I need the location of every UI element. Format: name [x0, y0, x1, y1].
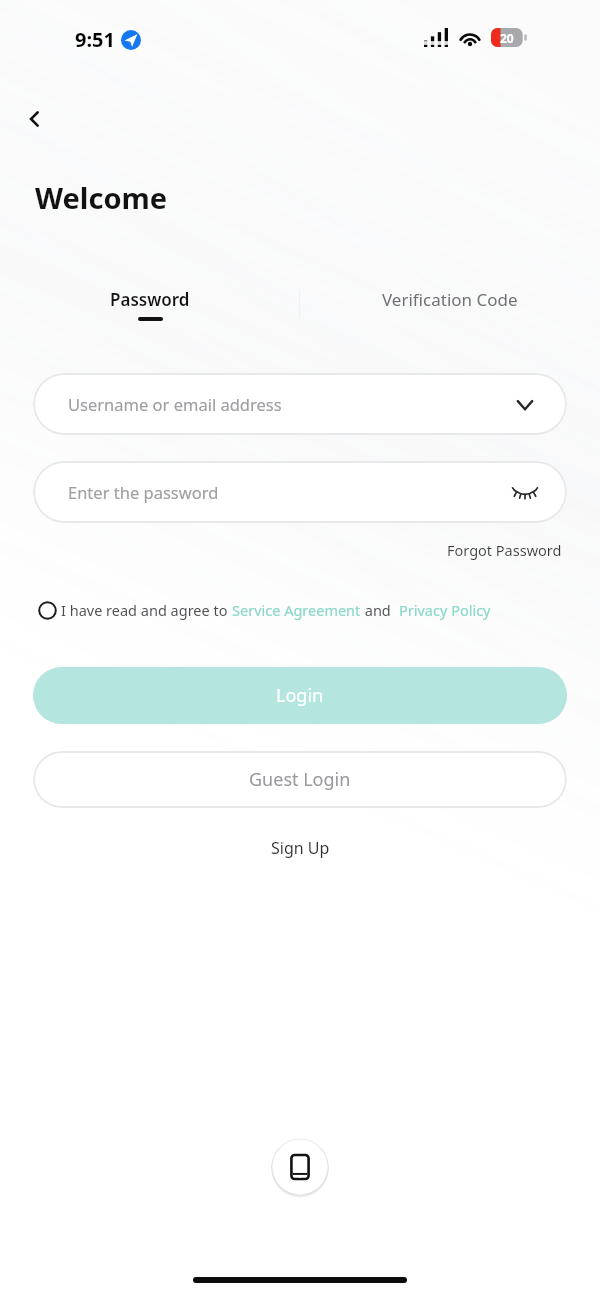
button[interactable]: Verification Code [300, 288, 600, 328]
button[interactable]: Login [33, 667, 567, 724]
button[interactable]: Enter the password [33, 461, 567, 523]
staticText: Welcome [35, 178, 168, 217]
button[interactable]: Privacy Policy [399, 600, 491, 620]
button[interactable]: Back [14, 98, 56, 140]
button[interactable]: Username or email address [33, 373, 567, 435]
staticText: and [361, 600, 399, 620]
staticText: Guest Login [249, 767, 351, 792]
staticText: Username or email address [68, 393, 282, 415]
button[interactable]: Forgot Password [443, 536, 566, 564]
staticText: Enter the password [68, 481, 219, 503]
button[interactable]: Agree to terms [33, 596, 61, 624]
staticText: 9:51 [75, 26, 115, 53]
staticText: Service Agreement [232, 600, 361, 620]
staticText: Login [276, 683, 324, 708]
staticText: 20 [500, 30, 514, 46]
button[interactable]: Sign Up [265, 831, 336, 865]
staticText: Sign Up [271, 837, 330, 859]
button[interactable]: Show password [509, 476, 541, 508]
staticText: Privacy Policy [399, 600, 491, 620]
staticText: I have read and agree to [61, 600, 232, 620]
button[interactable]: Service Agreement [232, 600, 361, 620]
staticText: Verification Code [382, 288, 518, 311]
button[interactable]: Select saved username [509, 388, 541, 420]
button[interactable]: Switch device [270, 1137, 330, 1197]
button[interactable]: Password [0, 288, 300, 328]
staticText: Password [110, 288, 190, 311]
staticText: Forgot Password [447, 540, 562, 560]
button[interactable]: Guest Login [33, 751, 567, 808]
